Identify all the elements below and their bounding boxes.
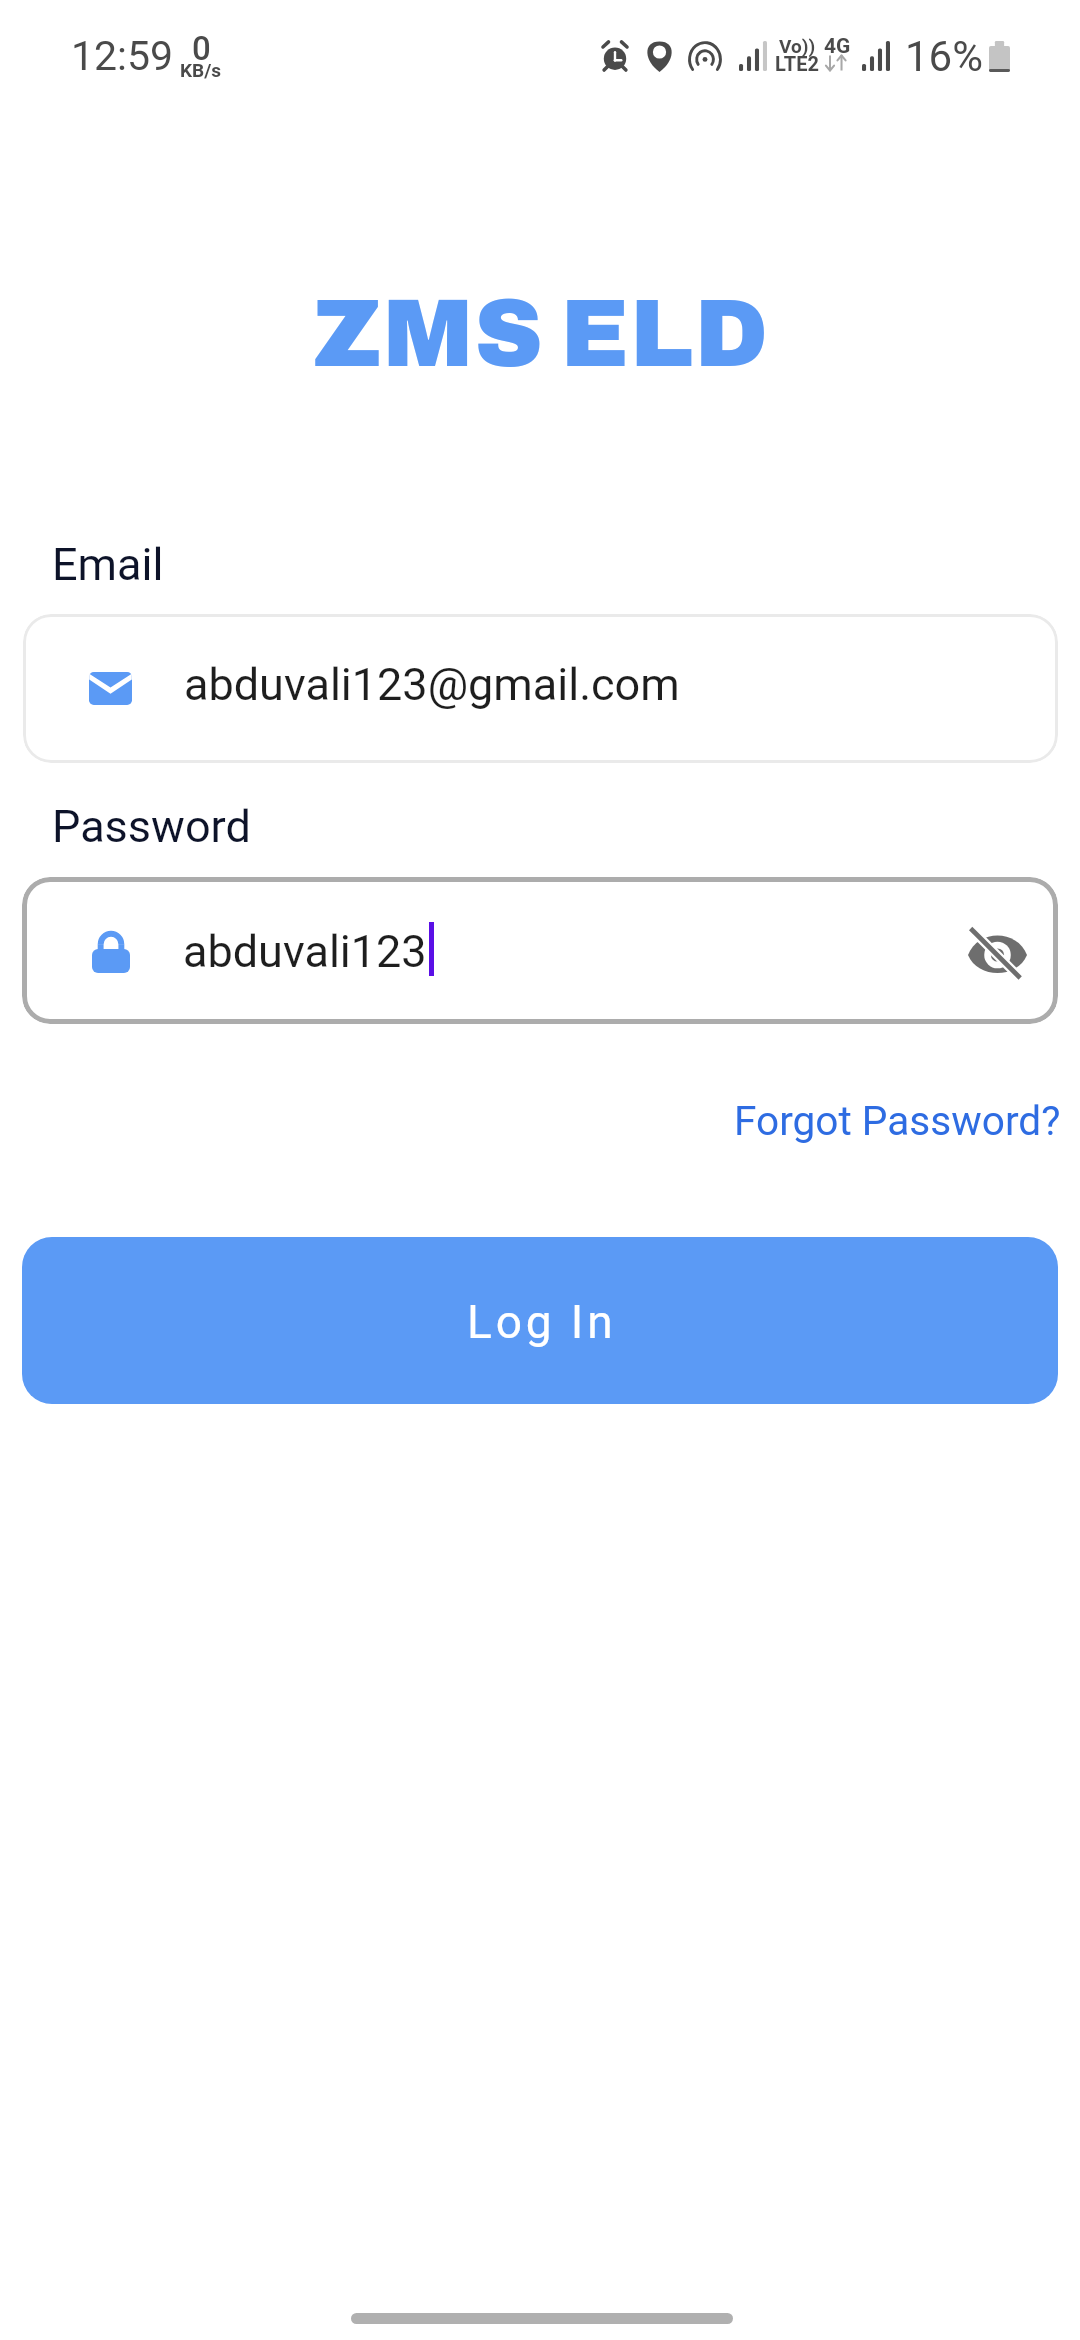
staticText: abduvali123 [183,925,427,978]
staticText: 12:59 [71,32,174,80]
staticText: Forgot Password? [734,1097,1061,1145]
staticText: 4G [824,34,851,59]
staticText: ELD [560,283,770,386]
staticText: KB/s [180,59,222,81]
staticText: 16% [905,32,983,81]
staticText: abduvali123@gmail.com [184,658,680,711]
staticText: Email [52,538,164,591]
button[interactable]: abduvali123 [22,877,1058,1024]
button[interactable]: Toggle password visibility [943,900,1051,1008]
button[interactable]: abduvali123@gmail.com [23,614,1058,763]
staticText: ZMS [313,283,544,386]
staticText: Vo)) [779,35,816,57]
staticText: Log In [467,1295,617,1349]
staticText: Password [52,800,251,853]
button[interactable]: Log In [22,1237,1058,1404]
button[interactable]: Forgot Password? [734,1097,1061,1145]
staticText: LTE2 [775,52,819,75]
staticText: 0 [192,29,211,68]
